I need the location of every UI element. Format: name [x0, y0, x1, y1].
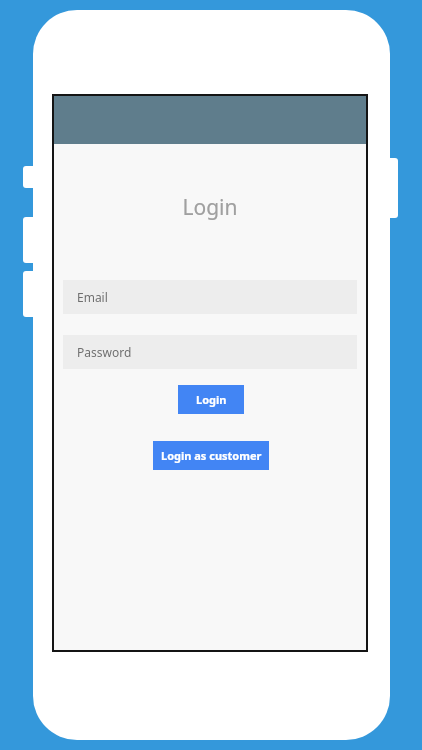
button[interactable]: Login as customer — [153, 441, 269, 470]
staticText: Login — [54, 193, 366, 222]
staticText: Email — [77, 289, 108, 305]
button[interactable]: Password — [63, 335, 357, 369]
staticText: Login — [196, 392, 227, 407]
button[interactable]: Login — [178, 385, 244, 414]
staticText: Password — [77, 344, 132, 360]
staticText: Login as customer — [161, 448, 262, 463]
button[interactable]: Email — [63, 280, 357, 314]
